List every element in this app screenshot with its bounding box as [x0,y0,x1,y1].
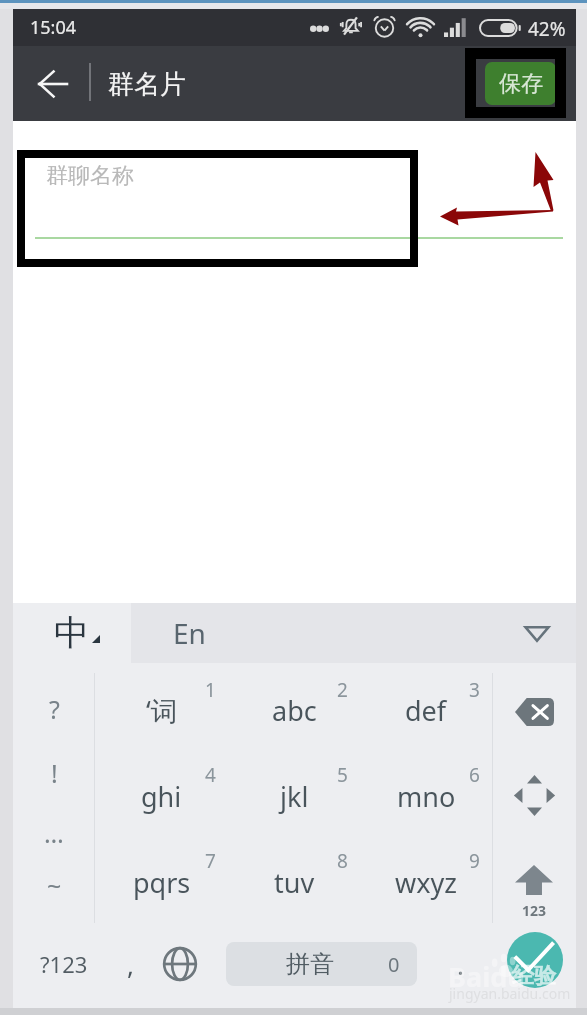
staticText: def [405,692,447,729]
staticText: 群聊名称 [46,162,134,190]
staticText: 123 [522,901,547,920]
button[interactable]: ! [13,747,95,799]
staticText: , [127,947,134,982]
staticText: 9 [469,848,480,874]
button[interactable]: 拼音 [226,942,417,986]
button[interactable]: wxyz [360,834,492,920]
button[interactable]: 中 [13,603,131,663]
button[interactable]: def [360,663,492,748]
staticText: tuv [274,864,315,901]
button[interactable]: jkl [228,748,360,834]
button[interactable]: Back [27,58,79,110]
button[interactable]: ?123 [23,920,105,1008]
button[interactable]: ? [13,683,95,735]
button[interactable]: En [131,603,576,663]
button[interactable]: tuv [228,834,360,920]
staticText: 0 [388,951,400,978]
staticText: 2 [337,677,348,703]
staticText: ‘词 [146,692,178,729]
button[interactable]: mno [360,748,492,834]
staticText: pqrs [133,864,191,901]
staticText: 7 [205,848,216,874]
staticText: 6 [469,762,480,788]
staticText: 15:04 [30,15,77,40]
button[interactable]: Switch language [153,920,207,1008]
button[interactable]: ‘词 [95,663,228,748]
staticText: … [44,816,64,850]
button[interactable]: , [103,920,157,1008]
button[interactable]: Navigate [492,768,576,823]
button[interactable]: ghi [95,748,228,834]
staticText: Baidu [448,958,525,995]
staticText: 经验 [512,962,556,990]
staticText: 8 [337,848,348,874]
button[interactable]: Numbers [492,864,576,920]
other: Navigate [513,776,556,815]
staticText: 3 [469,677,480,703]
staticText: ~ [47,868,62,902]
staticText: ghi [141,778,182,815]
button[interactable]: abc [228,663,360,748]
staticText: 拼音 [286,949,334,979]
other: Backspace [515,698,554,726]
staticText: 42% [528,16,566,42]
staticText: . [457,947,464,982]
button[interactable]: Backspace [492,684,576,739]
staticText: ? [49,692,60,726]
button[interactable]: … [13,807,95,859]
staticText: abc [272,692,317,729]
staticText: wxyz [395,864,457,901]
other: Numbers [515,865,553,920]
staticText: En [173,614,206,652]
staticText: ?123 [40,949,88,979]
button[interactable]: ~ [13,859,95,911]
staticText: ! [51,756,58,790]
staticText: 5 [337,762,348,788]
button[interactable]: 保存 [485,62,556,105]
staticText: 中 [54,611,89,655]
staticText: 4 [205,762,216,788]
button[interactable]: Enter [501,926,569,994]
staticText: jingyan.baidu.com [449,984,571,1003]
staticText: 群名片 [108,68,186,101]
other: Enter [507,932,563,988]
button[interactable]: pqrs [95,834,228,920]
button[interactable]: . [433,920,487,1008]
staticText: 1 [205,677,216,703]
staticText: jkl [280,778,309,815]
staticText: 保存 [499,70,543,98]
staticText: mno [397,778,456,815]
